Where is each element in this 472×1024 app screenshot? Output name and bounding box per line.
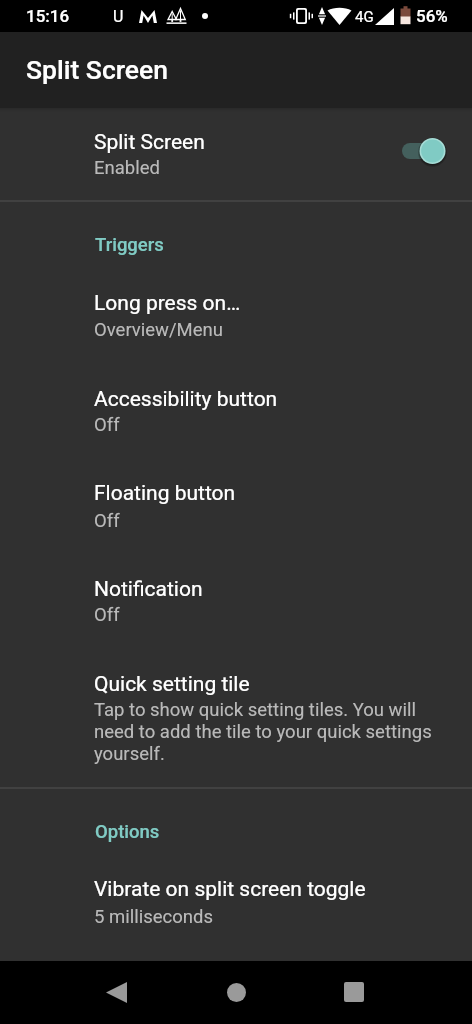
staticText: Off (94, 414, 120, 436)
staticText: Notification (94, 577, 203, 602)
staticText: Split Screen (94, 130, 205, 155)
button[interactable]: Back (86, 962, 146, 1022)
other: Split Screen, Enabled (386, 129, 462, 173)
staticText: Off (94, 510, 120, 532)
button[interactable]: Accessibility button (0, 365, 472, 460)
button[interactable]: Floating button (0, 460, 472, 555)
staticText: Quick setting tile (94, 672, 250, 697)
staticText: 4G (355, 8, 374, 26)
staticText: 5 milliseconds (94, 906, 213, 928)
button[interactable]: Quick setting tile (0, 650, 472, 775)
staticText: Triggers (95, 234, 164, 256)
staticText: Accessibility button (94, 387, 278, 412)
button[interactable]: Recent apps (324, 962, 384, 1022)
staticText: Vibrate on split screen toggle (94, 877, 366, 902)
button[interactable]: Split Screen (0, 108, 472, 200)
staticText: Floating button (94, 481, 236, 506)
button[interactable]: Vibrate on split screen toggle (0, 856, 472, 951)
staticText: Tap to show quick setting tiles. You wil… (94, 699, 434, 765)
button[interactable]: Long press on… (0, 270, 472, 365)
button[interactable]: Home (206, 962, 266, 1022)
staticText: U (113, 7, 124, 26)
button[interactable]: Notification (0, 555, 472, 650)
staticText: 56% (416, 6, 448, 26)
staticText: Options (95, 821, 160, 843)
staticText: Off (94, 604, 120, 626)
staticText: 15:16 (26, 6, 70, 26)
staticText: Split Screen (26, 54, 168, 85)
staticText: Enabled (94, 157, 160, 179)
staticText: Long press on… (94, 291, 241, 316)
staticText: Overview/Menu (94, 319, 223, 341)
